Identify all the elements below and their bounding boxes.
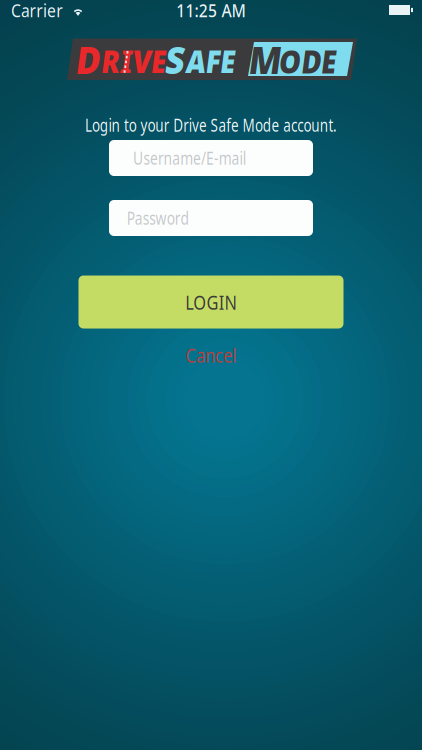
- button[interactable]: Password: [109, 200, 313, 236]
- staticText: Cancel: [180, 342, 242, 368]
- staticText: Carrier: [6, 0, 68, 22]
- staticText: M: [251, 35, 287, 84]
- staticText: Login to your Drive Safe Mode account.: [49, 113, 372, 136]
- staticText: RIVE: [99, 40, 175, 82]
- staticText: Password: [119, 206, 197, 229]
- button[interactable]: Username/E-mail: [109, 140, 313, 176]
- staticText: AFE: [185, 40, 243, 82]
- staticText: LOGIN: [179, 289, 242, 315]
- button[interactable]: LOGIN: [78, 275, 343, 328]
- button[interactable]: Cancel: [175, 337, 247, 373]
- staticText: ODE: [277, 40, 344, 82]
- staticText: D: [78, 35, 105, 84]
- staticText: S: [168, 35, 190, 84]
- staticText: Username/E-mail: [119, 146, 260, 169]
- staticText: 11:25 AM: [169, 0, 252, 22]
